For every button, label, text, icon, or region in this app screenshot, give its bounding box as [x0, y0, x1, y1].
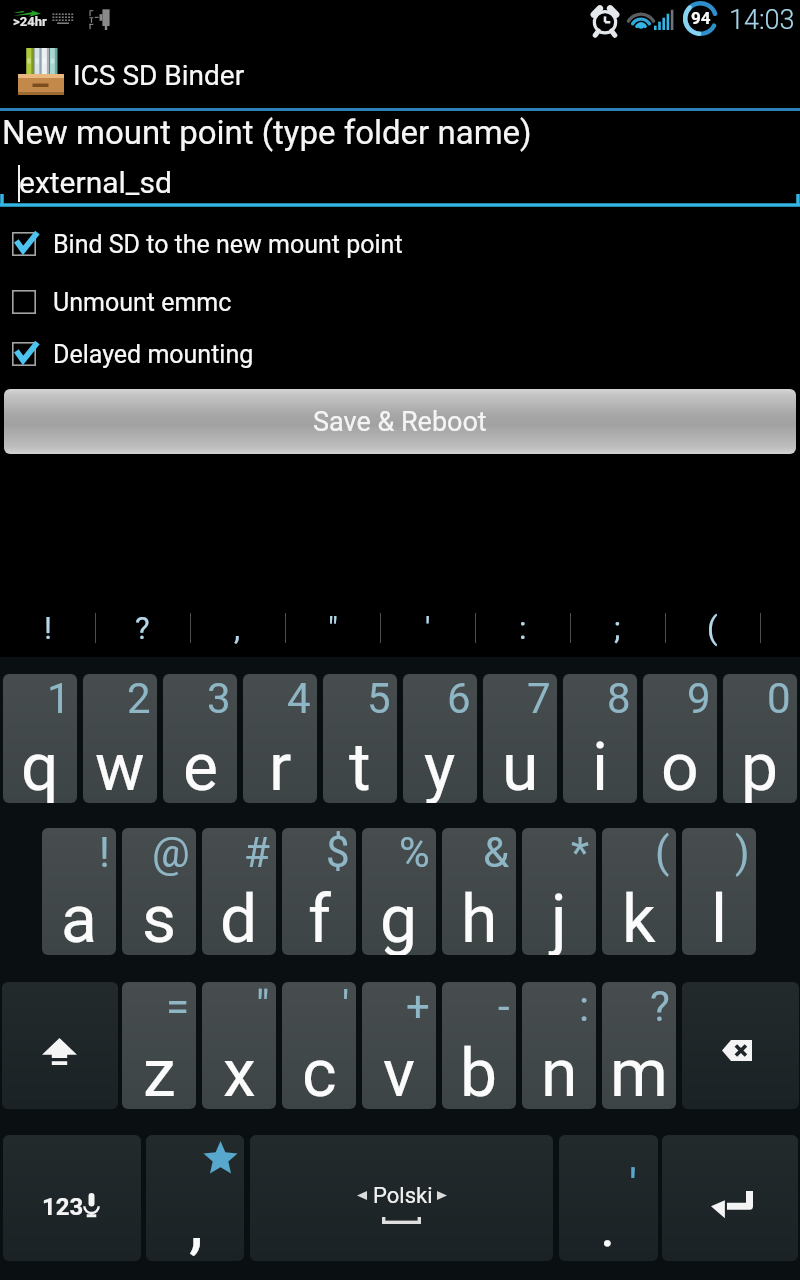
staticText: 0: [767, 674, 791, 723]
staticText: l: [711, 881, 728, 955]
staticText: -: [498, 982, 510, 1031]
button[interactable]: =: [122, 982, 196, 1109]
button[interactable]: Comma, settings: [146, 1135, 244, 1261]
staticText: Save & Reboot: [313, 406, 487, 438]
button[interactable]: Space: [250, 1135, 553, 1261]
staticText: &: [483, 828, 510, 877]
staticText: a: [61, 881, 97, 955]
button[interactable]: %: [362, 828, 436, 955]
button[interactable]: $: [282, 828, 356, 955]
button[interactable]: external_sd: [0, 158, 800, 207]
button[interactable]: ": [285, 598, 380, 657]
staticText: m: [610, 1035, 668, 1109]
button[interactable]: #: [202, 828, 276, 955]
button[interactable]: 1: [3, 674, 77, 803]
staticText: =: [166, 982, 190, 1031]
staticText: ': [629, 1159, 638, 1213]
staticText: c: [302, 1035, 337, 1109]
button[interactable]: ,: [190, 598, 285, 657]
staticText: ): [735, 828, 750, 877]
button[interactable]: 9: [643, 674, 717, 803]
button[interactable]: 8: [563, 674, 637, 803]
button[interactable]: Period: [559, 1135, 658, 1261]
staticText: s: [142, 881, 177, 955]
button[interactable]: ': [380, 598, 475, 657]
staticText: ,: [189, 1179, 204, 1261]
button[interactable]: Enter: [662, 1135, 798, 1261]
button[interactable]: 0: [723, 674, 797, 803]
button[interactable]: 4: [243, 674, 317, 803]
staticText: #: [244, 828, 270, 877]
button[interactable]: Bind SD to the new mount point: [0, 218, 800, 270]
staticText: ?: [650, 982, 670, 1031]
button[interactable]: ): [682, 828, 756, 955]
staticText: >24hr: [13, 14, 47, 29]
staticText: ICS SD Binder: [73, 59, 245, 92]
staticText: Delayed mounting: [53, 340, 254, 369]
staticText: 123: [42, 1193, 84, 1221]
staticText: Polski: [373, 1183, 433, 1209]
button[interactable]: ?: [95, 598, 190, 657]
staticText: Unmount emmc: [53, 288, 232, 317]
staticText: external_sd: [19, 165, 172, 200]
staticText: j: [551, 881, 567, 955]
staticText: 94: [691, 8, 711, 28]
button[interactable]: +: [362, 982, 436, 1109]
staticText: 5: [367, 674, 391, 723]
button[interactable]: 2: [83, 674, 157, 803]
staticText: i: [592, 729, 609, 803]
staticText: :: [579, 982, 590, 1031]
staticText: ?: [135, 610, 150, 646]
button[interactable]: Delayed mounting: [0, 328, 800, 380]
button[interactable]: @: [122, 828, 196, 955]
button[interactable]: *: [522, 828, 596, 955]
button[interactable]: !: [42, 828, 116, 955]
button[interactable]: ': [282, 982, 356, 1109]
button[interactable]: 5: [323, 674, 397, 803]
staticText: w: [95, 729, 145, 803]
staticText: (: [655, 828, 670, 877]
staticText: x: [223, 1035, 256, 1109]
button[interactable]: :: [522, 982, 596, 1109]
staticText: *: [571, 828, 590, 877]
button[interactable]: Shift: [2, 982, 118, 1109]
staticText: 6: [447, 674, 471, 723]
button[interactable]: (: [665, 598, 760, 657]
button[interactable]: ": [202, 982, 276, 1109]
button[interactable]: Symbols and voice input: [3, 1135, 141, 1261]
button[interactable]: 3: [163, 674, 237, 803]
button[interactable]: 7: [483, 674, 557, 803]
staticText: e: [183, 729, 218, 803]
button[interactable]: !: [0, 598, 95, 657]
staticText: ": [256, 982, 270, 1031]
button[interactable]: 6: [403, 674, 477, 803]
button[interactable]: :: [475, 598, 570, 657]
button[interactable]: &: [442, 828, 516, 955]
staticText: (: [707, 610, 718, 646]
button[interactable]: -: [442, 982, 516, 1109]
staticText: ,: [234, 610, 241, 646]
staticText: 1: [47, 674, 71, 723]
staticText: ;: [614, 610, 621, 646]
staticText: q: [21, 729, 59, 803]
button[interactable]: ?: [602, 982, 676, 1109]
staticText: !: [99, 828, 110, 877]
staticText: $: [326, 828, 350, 877]
staticText: ": [328, 610, 338, 646]
staticText: New mount point (type folder name): [2, 113, 532, 152]
staticText: +: [406, 982, 430, 1031]
button[interactable]: Save & Reboot: [4, 389, 796, 454]
button[interactable]: (: [602, 828, 676, 955]
button[interactable]: Unmount emmc: [0, 276, 800, 328]
staticText: 14:03: [729, 4, 795, 36]
staticText: 9: [687, 674, 711, 723]
staticText: d: [220, 881, 258, 955]
staticText: r: [269, 729, 292, 803]
staticText: z: [143, 1035, 176, 1109]
staticText: Bind SD to the new mount point: [53, 230, 403, 259]
staticText: y: [424, 729, 456, 803]
button[interactable]: ;: [570, 598, 665, 657]
button[interactable]: Delete: [682, 982, 799, 1109]
staticText: 3: [207, 674, 231, 723]
staticText: ': [425, 610, 431, 646]
